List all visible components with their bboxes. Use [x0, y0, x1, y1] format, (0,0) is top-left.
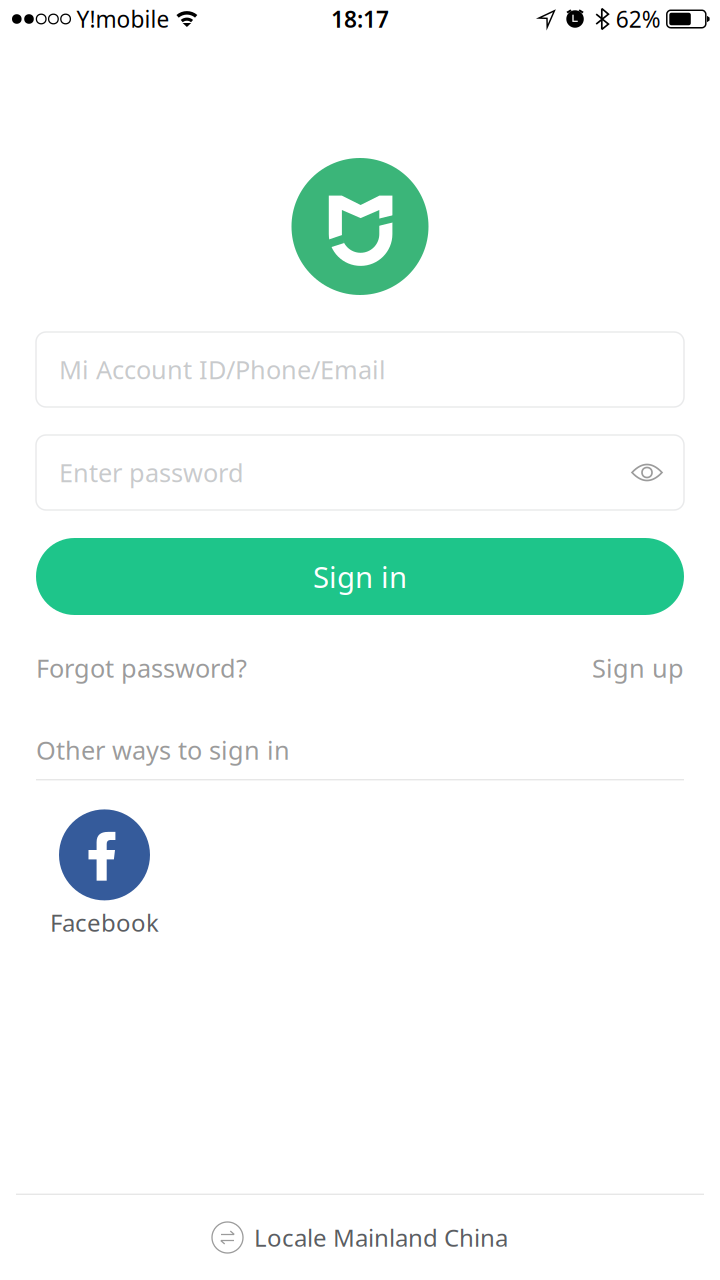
- staticText: Forgot password?: [36, 651, 247, 685]
- staticText: 62%: [616, 4, 661, 34]
- staticText: 18:17: [331, 4, 389, 34]
- button[interactable]: Facebook: [50, 809, 159, 938]
- staticText: Sign in: [313, 557, 407, 596]
- button[interactable]: Forgot password?: [36, 615, 247, 721]
- staticText: Facebook: [50, 906, 159, 938]
- button[interactable]: Sign up: [592, 615, 684, 721]
- button[interactable]: Locale Mainland China: [0, 1195, 720, 1280]
- staticText: Enter password: [59, 456, 244, 489]
- staticText: Sign up: [592, 651, 684, 685]
- staticText: Other ways to sign in: [36, 733, 290, 767]
- staticText: Y!mobile: [76, 4, 169, 34]
- button[interactable]: Sign in: [36, 538, 684, 615]
- button[interactable]: Show password: [613, 443, 663, 501]
- staticText: Mi Account ID/Phone/Email: [59, 353, 386, 386]
- staticText: Locale Mainland China: [254, 1222, 508, 1253]
